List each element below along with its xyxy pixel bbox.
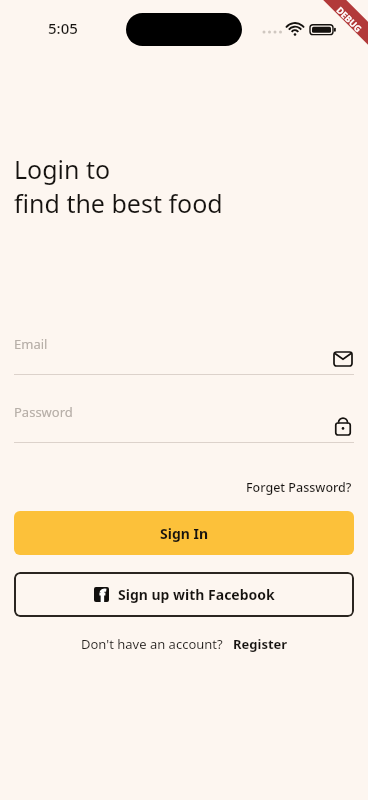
button[interactable]: Email xyxy=(14,335,354,370)
button[interactable]: Password xyxy=(14,403,354,438)
staticText: Sign up with Facebook xyxy=(118,585,275,604)
staticText: DEBUG xyxy=(334,4,365,34)
staticText: Password xyxy=(14,403,73,421)
button[interactable]: Sign up with Facebook xyxy=(14,572,354,617)
staticText: Email xyxy=(14,335,48,353)
button[interactable]: Forget Password? xyxy=(244,476,354,499)
staticText: Sign In xyxy=(160,524,209,543)
staticText: Register xyxy=(233,635,288,653)
staticText: Login to xyxy=(14,152,111,186)
button[interactable]: Register xyxy=(233,635,288,653)
staticText: find the best food xyxy=(14,186,223,220)
other: Password xyxy=(332,416,354,438)
button[interactable]: Sign In xyxy=(14,511,354,555)
staticText: 5:05 xyxy=(48,18,78,38)
staticText: Don't have an account? xyxy=(81,635,223,653)
other: Email xyxy=(332,348,354,370)
staticText: Forget Password? xyxy=(246,479,352,496)
